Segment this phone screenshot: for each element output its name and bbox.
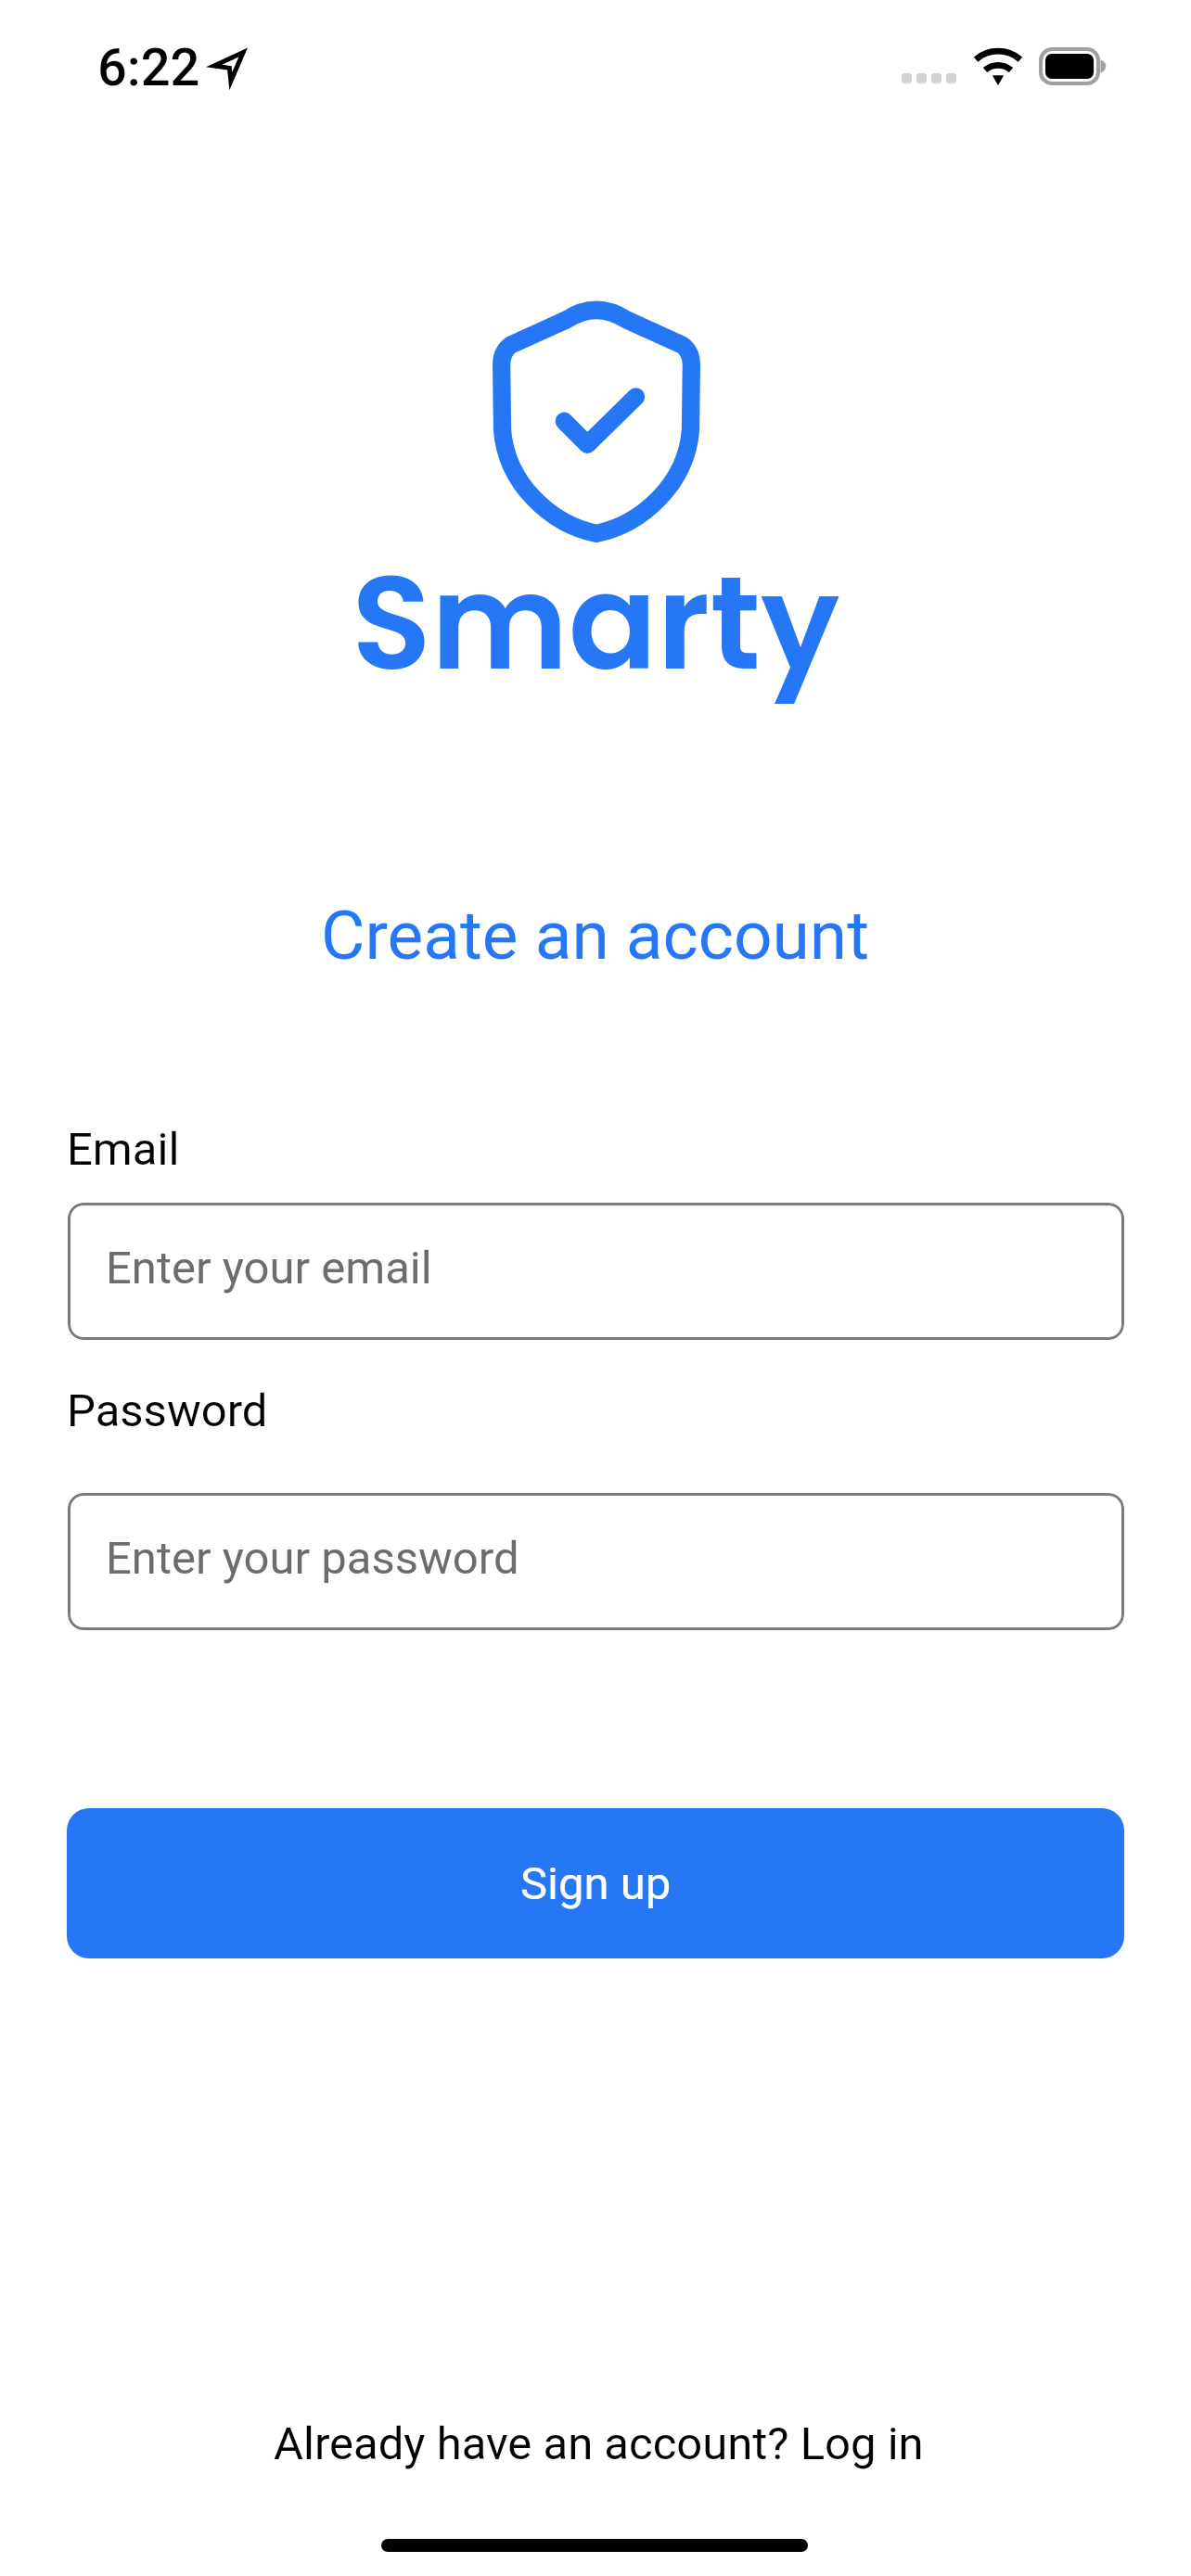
staticText: Already have an account? Log in	[274, 2417, 924, 2470]
other: Battery	[1039, 47, 1107, 85]
other: Wi-Fi	[973, 47, 1023, 85]
button[interactable]: Already have an account? Log in	[263, 2412, 935, 2476]
button[interactable]: Enter your email	[68, 1203, 1124, 1340]
button[interactable]: Sign up	[67, 1808, 1124, 1958]
staticText: 6:22	[97, 37, 200, 98]
other: Smarty shield logo	[493, 305, 700, 542]
staticText: Enter your password	[106, 1532, 519, 1585]
staticText: Create an account	[321, 896, 870, 976]
staticText: Enter your email	[106, 1242, 432, 1294]
staticText: Sign up	[520, 1857, 672, 1910]
other: Location	[209, 46, 249, 85]
button[interactable]: Enter your password	[68, 1493, 1124, 1630]
staticText: Smarty	[352, 531, 840, 714]
staticText: Password	[67, 1384, 268, 1437]
staticText: Email	[67, 1123, 180, 1176]
